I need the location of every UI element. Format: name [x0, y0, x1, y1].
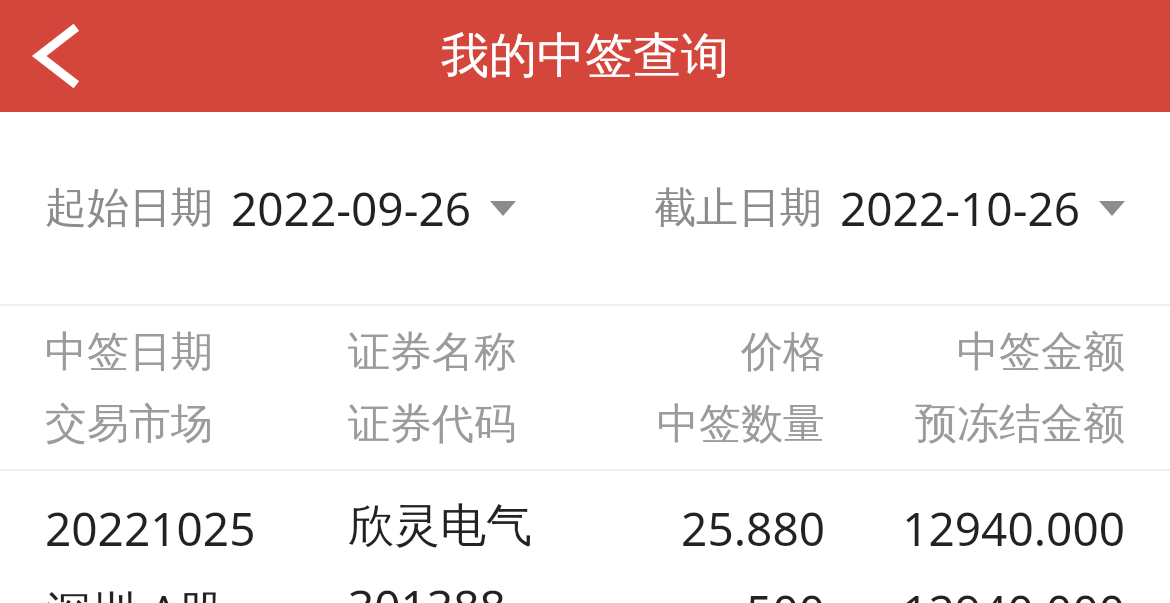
staticText: 交易市场 [45, 398, 213, 451]
staticText: 我的中签查询 [0, 26, 1170, 86]
staticText: 截止日期 [654, 182, 822, 235]
staticText: 证券名称 [348, 326, 516, 379]
staticText: 欣灵电气 [348, 497, 532, 555]
button[interactable]: 起始日期 [45, 177, 516, 240]
staticText: 中签日期 [45, 326, 213, 379]
button[interactable]: 20221025 [45, 497, 1125, 603]
staticText: 预冻结金额 [825, 398, 1125, 451]
staticText: 12940.000 [825, 497, 1125, 560]
staticText: 中签数量 [645, 398, 825, 451]
staticText: 深圳 A股 [45, 580, 225, 603]
button[interactable]: 截止日期 [654, 177, 1125, 240]
staticText: 证券代码 [348, 398, 516, 451]
staticText: 25.880 [645, 497, 825, 560]
staticText: 301388 [348, 575, 506, 603]
staticText: 中签金额 [825, 326, 1125, 379]
staticText: 2022-09-26 [231, 177, 472, 240]
staticText: 20221025 [45, 497, 256, 560]
staticText: 起始日期 [45, 182, 213, 235]
staticText: 2022-10-26 [840, 177, 1081, 240]
staticText: 500 [645, 580, 825, 603]
staticText: 12940.000 [825, 580, 1125, 603]
button[interactable]: 中签日期 [45, 326, 1125, 451]
button[interactable]: Back [0, 0, 112, 112]
staticText: 价格 [645, 326, 825, 379]
